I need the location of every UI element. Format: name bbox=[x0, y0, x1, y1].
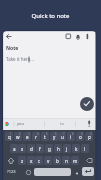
button[interactable] bbox=[63, 31, 73, 43]
button[interactable]: q bbox=[5, 132, 13, 141]
staticText: t bbox=[44, 134, 46, 140]
staticText: y bbox=[53, 134, 56, 140]
button[interactable]: g bbox=[45, 144, 53, 153]
button[interactable]: y bbox=[50, 132, 58, 141]
staticText: 4 bbox=[37, 132, 39, 136]
staticText: i bbox=[70, 134, 72, 140]
staticText: s bbox=[21, 146, 24, 152]
button[interactable]: to bbox=[60, 121, 64, 126]
button[interactable]: k bbox=[72, 144, 80, 153]
button[interactable]: v bbox=[44, 156, 52, 165]
staticText: 8 bbox=[72, 132, 74, 136]
button[interactable] bbox=[34, 168, 71, 176]
button[interactable]: ?123 bbox=[7, 169, 16, 174]
staticText: 1 bbox=[10, 132, 12, 136]
staticText: d bbox=[30, 146, 33, 152]
staticText: r bbox=[35, 134, 37, 140]
button[interactable]: w bbox=[14, 132, 22, 141]
staticText: c bbox=[38, 158, 41, 164]
button[interactable] bbox=[73, 31, 83, 43]
staticText: m bbox=[73, 158, 78, 164]
staticText: h bbox=[57, 146, 60, 152]
button[interactable]: h bbox=[54, 144, 62, 153]
staticText: k bbox=[75, 146, 78, 152]
staticText: Take it here... bbox=[6, 56, 34, 62]
button[interactable]: f bbox=[36, 144, 44, 153]
button[interactable]: c bbox=[35, 156, 43, 165]
button[interactable]: o bbox=[76, 132, 84, 141]
button[interactable] bbox=[3, 31, 15, 43]
staticText: 6 bbox=[55, 132, 57, 136]
staticText: w bbox=[16, 134, 20, 140]
button[interactable]: a bbox=[10, 144, 18, 153]
button[interactable]: b bbox=[53, 156, 61, 165]
staticText: 5 bbox=[46, 132, 48, 136]
staticText: 7 bbox=[63, 132, 65, 136]
button[interactable]: d bbox=[27, 144, 35, 153]
button[interactable] bbox=[6, 156, 16, 165]
button[interactable]: j bbox=[63, 144, 71, 153]
button[interactable]: n bbox=[62, 156, 70, 165]
staticText: b bbox=[56, 158, 59, 164]
staticText: e bbox=[26, 134, 29, 140]
staticText: x bbox=[30, 158, 33, 164]
button[interactable]: p bbox=[85, 132, 93, 141]
staticText: u bbox=[61, 134, 64, 140]
staticText: q bbox=[8, 134, 11, 140]
button[interactable]: m bbox=[71, 156, 79, 165]
staticText: v bbox=[47, 158, 50, 164]
button[interactable]: z bbox=[18, 156, 26, 165]
button[interactable]: l bbox=[81, 144, 89, 153]
button[interactable] bbox=[82, 167, 94, 176]
staticText: Note bbox=[6, 45, 19, 52]
staticText: a bbox=[13, 146, 16, 152]
button[interactable]: you bbox=[17, 121, 24, 126]
button[interactable]: x bbox=[27, 156, 35, 165]
button[interactable]: i bbox=[67, 132, 75, 141]
staticText: 2 bbox=[19, 132, 21, 136]
button[interactable] bbox=[26, 170, 31, 175]
staticText: 0 bbox=[90, 132, 92, 136]
button[interactable]: t bbox=[41, 132, 49, 141]
staticText: j bbox=[66, 146, 68, 152]
button[interactable] bbox=[73, 168, 81, 176]
button[interactable]: s bbox=[18, 144, 26, 153]
button[interactable] bbox=[83, 156, 94, 165]
staticText: n bbox=[65, 158, 68, 164]
staticText: p bbox=[88, 134, 91, 140]
staticText: z bbox=[21, 158, 24, 164]
staticText: o bbox=[79, 134, 82, 140]
staticText: 3 bbox=[28, 132, 30, 136]
button[interactable] bbox=[82, 31, 91, 43]
button[interactable]: u bbox=[58, 132, 66, 141]
staticText: f bbox=[39, 146, 41, 152]
staticText: Quick to note bbox=[0, 12, 101, 20]
button[interactable]: r bbox=[32, 132, 40, 141]
button[interactable]: e bbox=[23, 132, 31, 141]
staticText: 9 bbox=[81, 132, 83, 136]
staticText: l bbox=[84, 146, 86, 152]
staticText: g bbox=[48, 146, 51, 152]
button[interactable] bbox=[80, 97, 94, 111]
